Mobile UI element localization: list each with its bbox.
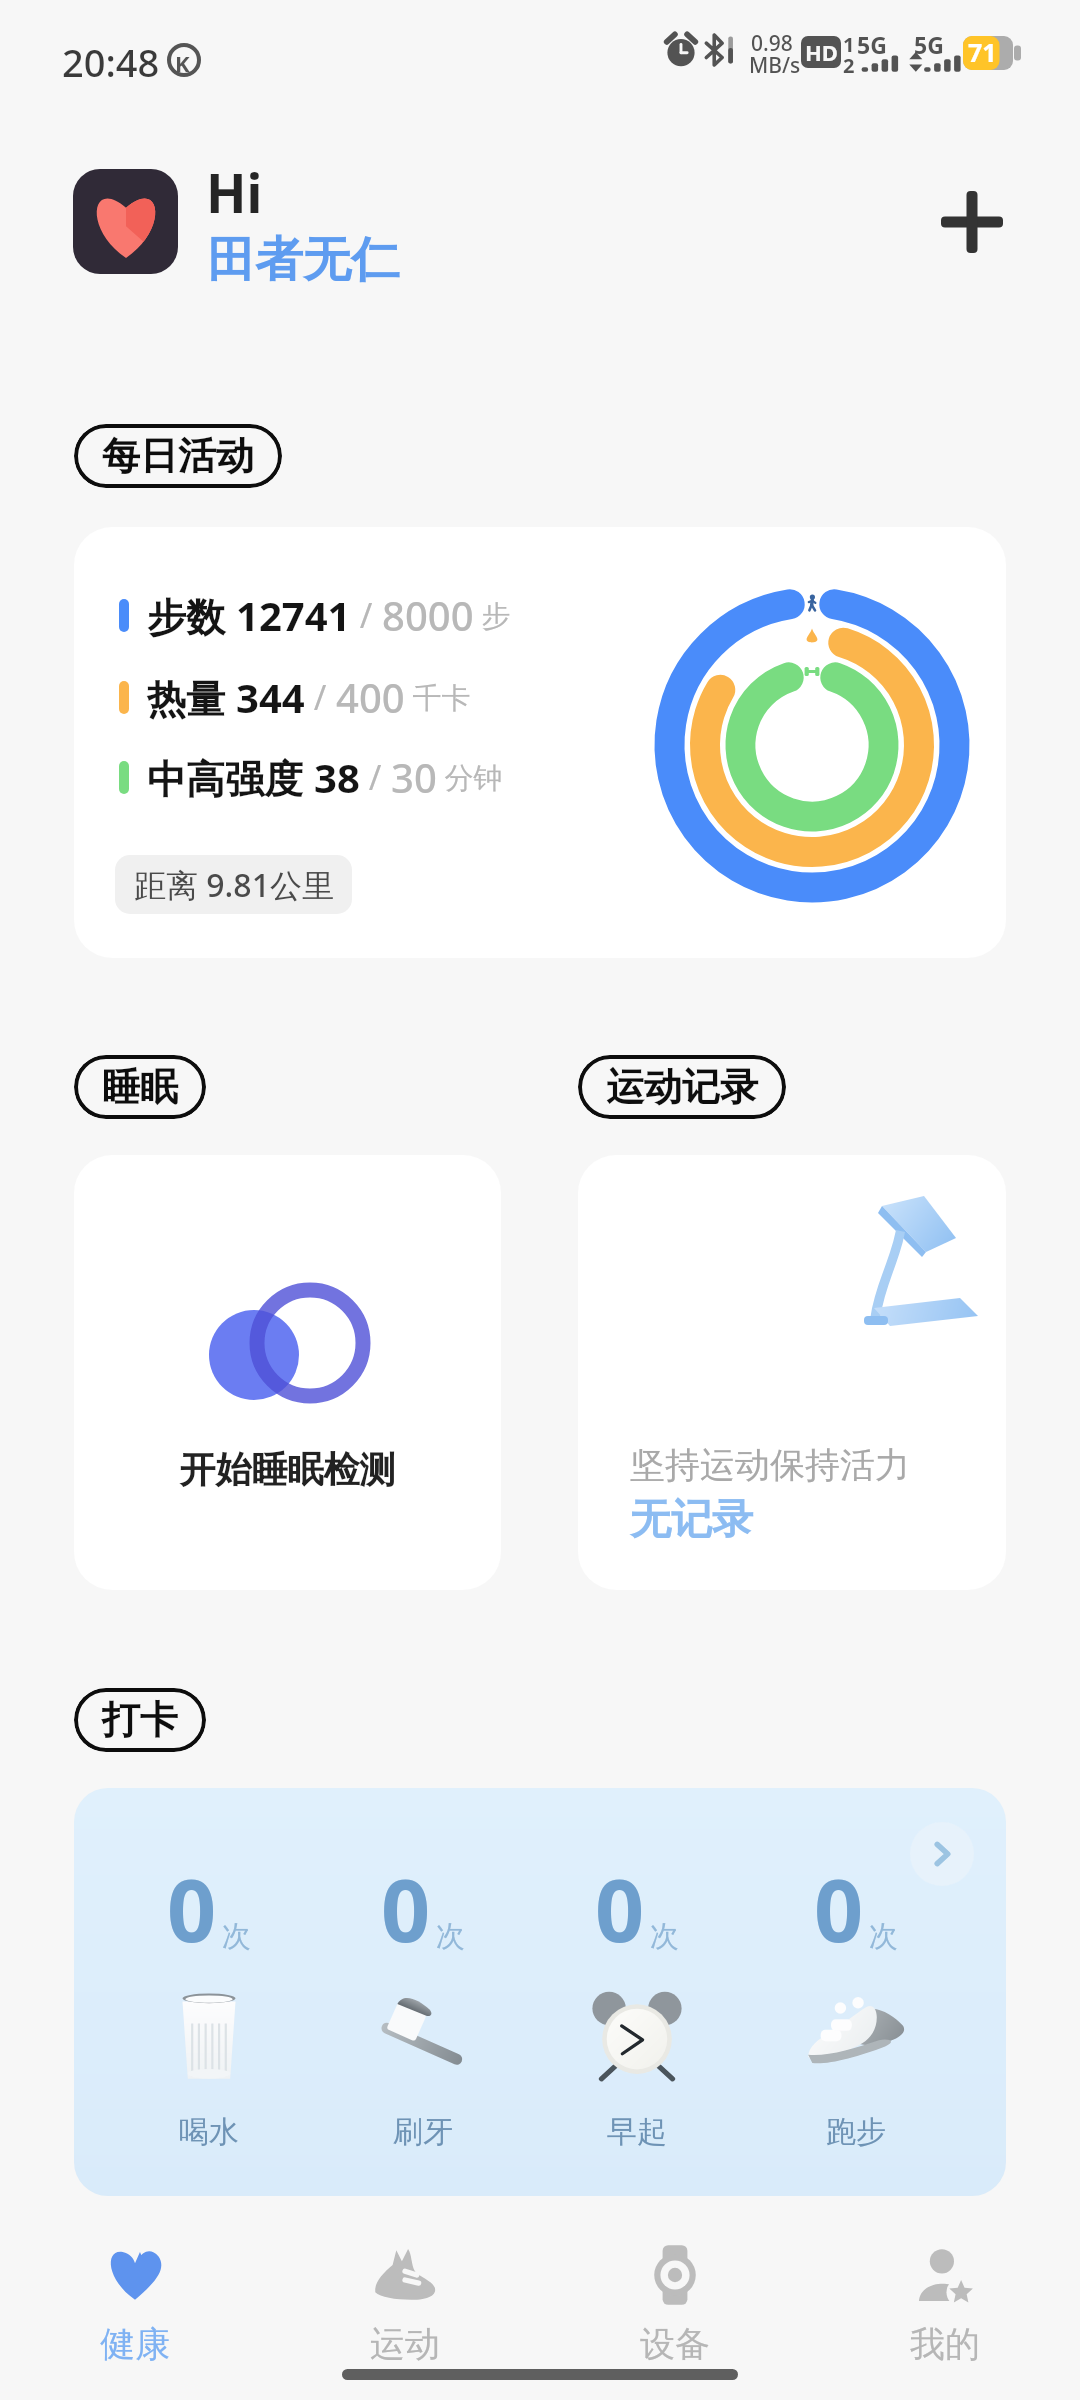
- button[interactable]: 0: [748, 1788, 964, 2196]
- button[interactable]: 步数: [74, 527, 1006, 958]
- staticText: 0: [814, 1850, 864, 1967]
- staticText: 344: [236, 670, 305, 724]
- staticText: 坚持运动保持活力: [630, 1443, 910, 1487]
- staticText: 睡眠: [102, 1063, 178, 1111]
- staticText: MB/s: [749, 51, 801, 80]
- staticText: 健康: [100, 2322, 170, 2366]
- staticText: 刷牙: [393, 2113, 453, 2151]
- staticText: HD: [805, 37, 838, 67]
- staticText: 2: [843, 52, 855, 79]
- button[interactable]: 打卡: [74, 1688, 206, 1752]
- staticText: 打卡: [102, 1696, 178, 1744]
- button[interactable]: 运动记录: [578, 1055, 786, 1119]
- staticText: 400: [336, 670, 405, 724]
- staticText: 步: [474, 595, 511, 635]
- button[interactable]: 0: [315, 1788, 531, 2196]
- staticText: 71: [968, 35, 997, 69]
- staticText: 跑步: [826, 2113, 886, 2151]
- staticText: 5G: [857, 29, 887, 60]
- staticText: K: [175, 48, 190, 78]
- staticText: 运动记录: [606, 1063, 758, 1111]
- button[interactable]: 设备: [540, 2210, 810, 2400]
- staticText: 开始睡眠检测: [74, 1447, 501, 1492]
- staticText: 30: [391, 750, 437, 804]
- button[interactable]: 每日活动: [74, 424, 282, 488]
- staticText: 中高强度: [147, 751, 314, 804]
- staticText: 喝水: [179, 2113, 239, 2151]
- staticText: 1: [843, 31, 855, 58]
- button[interactable]: 坚持运动保持活力: [578, 1155, 1006, 1590]
- staticText: Hi: [206, 156, 263, 228]
- staticText: 0: [381, 1850, 431, 1967]
- staticText: 田者无仁: [207, 230, 399, 290]
- staticText: 步数: [147, 589, 236, 642]
- staticText: /: [360, 754, 391, 800]
- staticText: /: [305, 674, 336, 720]
- staticText: 次: [436, 1918, 465, 1955]
- staticText: 次: [222, 1918, 251, 1955]
- staticText: 设备: [640, 2322, 710, 2366]
- staticText: 千卡: [405, 677, 471, 717]
- button[interactable]: 开始睡眠检测: [74, 1155, 501, 1590]
- staticText: /: [351, 592, 382, 638]
- staticText: 12741: [236, 588, 351, 642]
- staticText: 运动: [370, 2322, 440, 2366]
- staticText: 无记录: [630, 1494, 753, 1546]
- staticText: 距离 9.81公里: [134, 863, 334, 907]
- button[interactable]: 0: [529, 1788, 745, 2196]
- staticText: 5G: [914, 29, 944, 60]
- button[interactable]: 我的: [810, 2210, 1080, 2400]
- staticText: 分钟: [437, 757, 503, 797]
- staticText: 20:48: [62, 36, 160, 88]
- staticText: 我的: [910, 2322, 980, 2366]
- staticText: 0: [595, 1850, 645, 1967]
- staticText: 次: [869, 1918, 898, 1955]
- button[interactable]: 健康: [0, 2210, 270, 2400]
- button[interactable]: Add: [912, 162, 1032, 282]
- staticText: 每日活动: [102, 432, 254, 480]
- button[interactable]: 0: [101, 1788, 317, 2196]
- staticText: 早起: [607, 2113, 667, 2151]
- staticText: 次: [650, 1918, 679, 1955]
- staticText: 热量: [147, 671, 236, 724]
- button[interactable]: 运动: [270, 2210, 540, 2400]
- staticText: 8000: [382, 588, 474, 642]
- staticText: 0.98: [751, 29, 793, 58]
- button[interactable]: More: [910, 1822, 974, 1886]
- staticText: 38: [314, 750, 360, 804]
- button[interactable]: 睡眠: [74, 1055, 206, 1119]
- staticText: 0: [167, 1850, 217, 1967]
